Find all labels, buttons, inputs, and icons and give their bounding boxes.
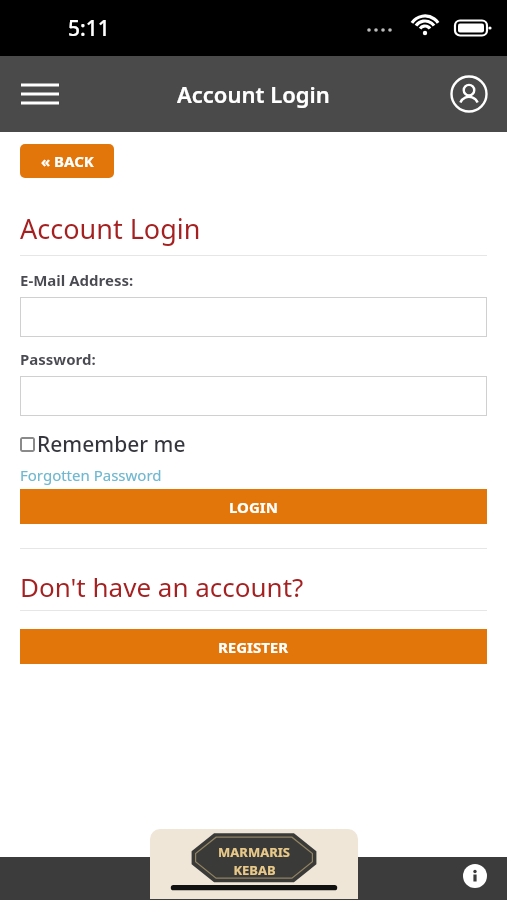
staticText: Account Login — [177, 79, 330, 109]
button[interactable]: Remember me — [20, 430, 186, 459]
staticText: Account Login — [20, 210, 201, 247]
staticText: Remember me — [37, 430, 186, 459]
button[interactable] — [20, 297, 487, 337]
staticText: KEBAB — [233, 861, 276, 879]
button[interactable]: Account — [445, 70, 493, 118]
staticText: MARMARIS — [218, 843, 290, 861]
button[interactable]: Information — [459, 860, 491, 892]
staticText: Don't have an account? — [20, 569, 304, 604]
button[interactable]: MARMARIS — [150, 829, 358, 899]
button[interactable]: Forgotten Password — [20, 465, 162, 485]
staticText: REGISTER — [218, 637, 289, 657]
staticText: « BACK — [41, 151, 94, 171]
staticText: Password: — [20, 349, 96, 369]
button[interactable]: « BACK — [20, 144, 114, 178]
staticText: 5:11 — [68, 14, 110, 43]
staticText: LOGIN — [229, 497, 278, 517]
button[interactable]: Menu — [10, 69, 70, 119]
button[interactable]: REGISTER — [20, 629, 487, 664]
staticText: E-Mail Address: — [20, 270, 134, 290]
button[interactable]: LOGIN — [20, 489, 487, 524]
button[interactable] — [20, 376, 487, 416]
